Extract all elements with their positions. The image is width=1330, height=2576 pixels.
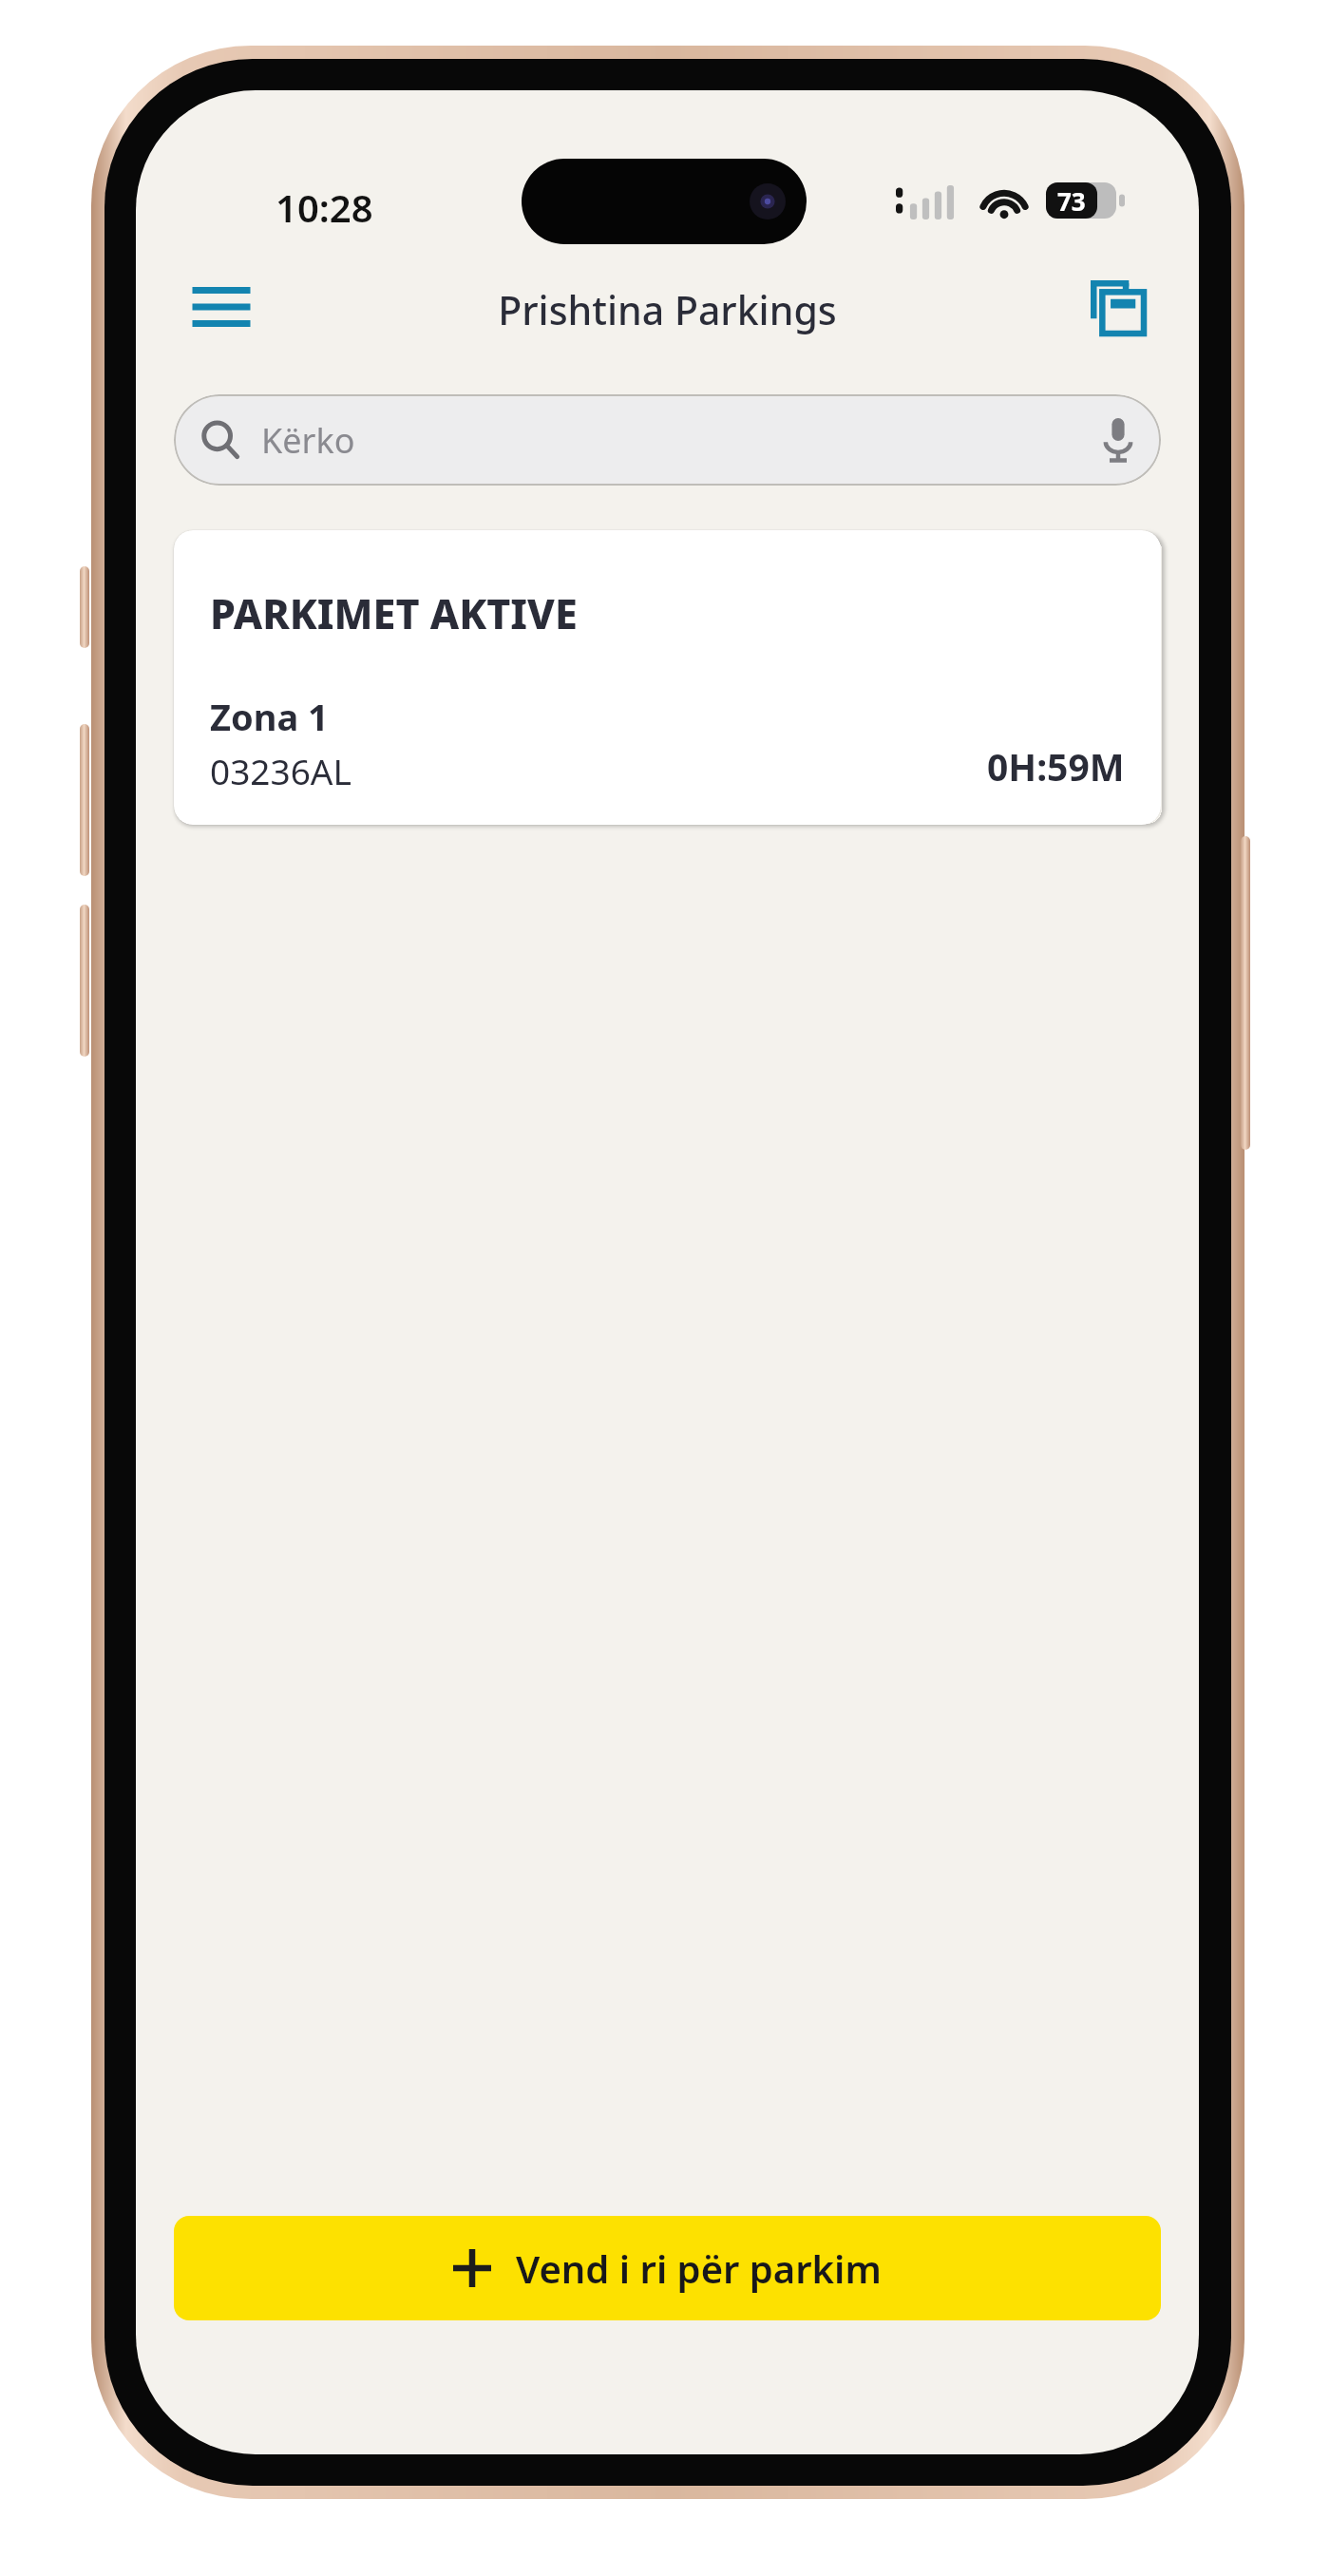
staticText: 03236AL xyxy=(210,747,351,794)
button[interactable]: Duplicate xyxy=(1072,261,1163,353)
staticText: 73 xyxy=(1057,184,1086,218)
staticText: 0H:59M xyxy=(987,741,1125,792)
staticText: Kërko xyxy=(261,417,355,464)
button[interactable]: Vend i ri për parkim xyxy=(174,2216,1161,2320)
staticText: Vend i ri për parkim xyxy=(516,2242,882,2294)
button[interactable]: Menu xyxy=(174,261,269,353)
staticText: 10:28 xyxy=(275,181,373,233)
button[interactable]: Kërko xyxy=(174,394,1161,486)
staticText: Zona 1 xyxy=(210,692,329,741)
button[interactable]: PARKIMET AKTIVE xyxy=(174,530,1161,825)
other: Voice search xyxy=(1104,418,1132,462)
staticText: Prishtina Parkings xyxy=(136,283,1199,336)
staticText: PARKIMET AKTIVE xyxy=(210,585,578,641)
